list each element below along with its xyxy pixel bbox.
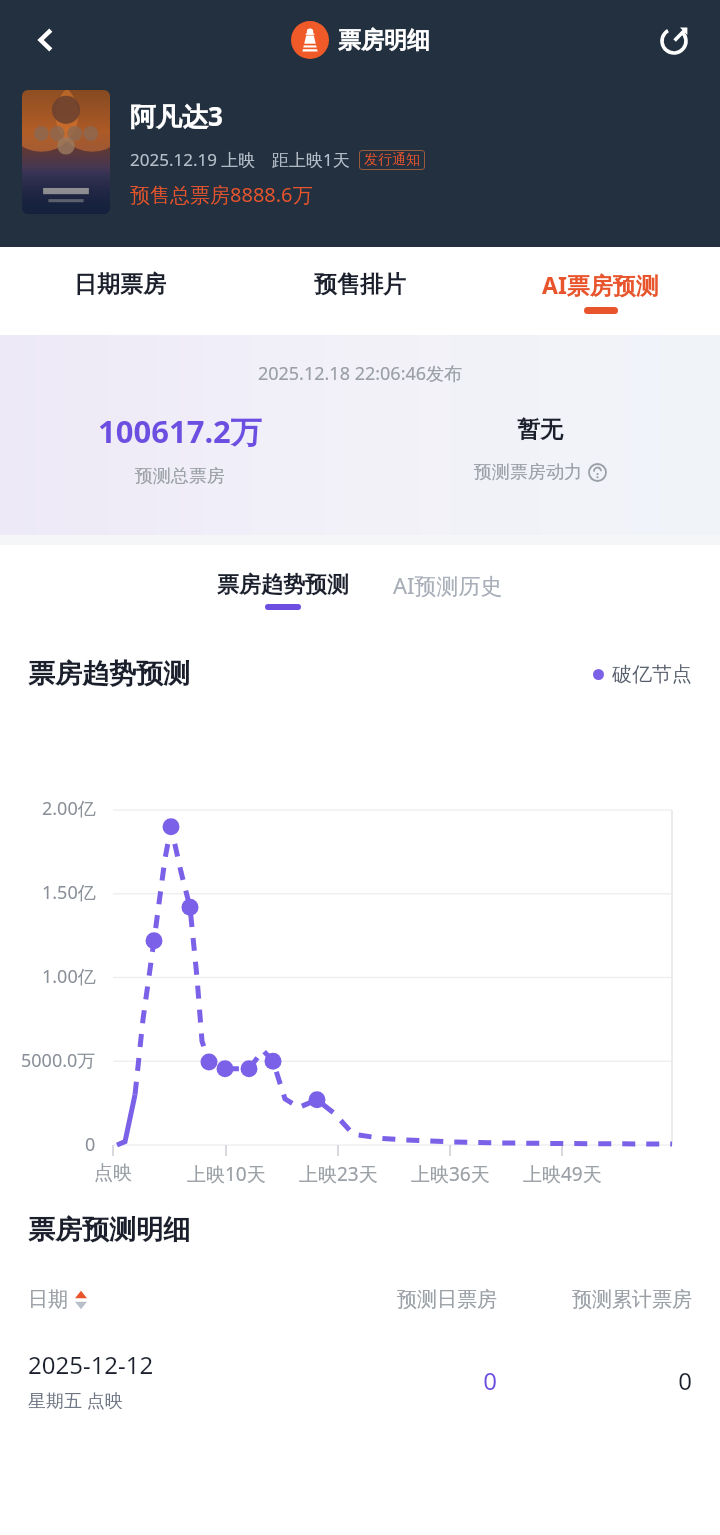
staticText: 0 [85, 1132, 96, 1157]
button[interactable]: Back [18, 12, 74, 68]
button[interactable]: Share [646, 12, 702, 68]
staticText: 暂无 [517, 415, 563, 444]
staticText: 点映 [94, 1161, 132, 1185]
button[interactable]: 日期票房 [0, 247, 240, 335]
staticText: 上映36天 [411, 1161, 490, 1187]
staticText: 星期五 点映 [28, 1388, 123, 1413]
staticText: 预售总票房8888.6万 [130, 181, 313, 208]
button[interactable]: 日期 [28, 1287, 327, 1312]
staticText: 阿凡达3 [130, 98, 223, 134]
staticText: 预测累计票房 [497, 1287, 692, 1312]
staticText: 100617.2万 [98, 410, 262, 452]
staticText: 票房趋势预测 [217, 571, 349, 599]
staticText: 票房明细 [338, 26, 430, 55]
staticText: 预测日票房 [327, 1287, 497, 1312]
staticText: AI预测历史 [393, 570, 503, 600]
button[interactable]: 2025-12-12 [28, 1348, 692, 1413]
staticText: 上映23天 [299, 1161, 378, 1187]
staticText: 预测票房动力 [474, 461, 582, 484]
button[interactable]: 发行通知 [364, 151, 420, 169]
staticText: 预测总票房 [135, 465, 225, 488]
staticText: 预售排片 [314, 270, 406, 299]
staticText: 0 [497, 1364, 692, 1397]
button[interactable]: 预测票房动力 [474, 461, 607, 484]
staticText: 1.00亿 [42, 964, 96, 989]
button[interactable]: AI预测历史 [393, 570, 503, 600]
staticText: 票房预测明细 [28, 1213, 190, 1247]
staticText: 2025-12-12 [28, 1348, 154, 1381]
button[interactable]: AI票房预测 [480, 247, 720, 335]
staticText: 发行通知 [364, 151, 420, 169]
staticText: 破亿节点 [612, 662, 692, 687]
staticText: 日期票房 [74, 270, 166, 299]
staticText: 票房趋势预测 [28, 657, 190, 691]
staticText: AI票房预测 [542, 269, 659, 300]
button[interactable]: 阿凡达3 [22, 90, 720, 214]
staticText: 日期 [28, 1287, 68, 1312]
staticText: 上映49天 [523, 1161, 602, 1187]
staticText: 2.00亿 [42, 796, 96, 821]
staticText: 0 [327, 1364, 497, 1397]
staticText: 上映10天 [187, 1161, 266, 1187]
staticText: 2025.12.18 22:06:46发布 [0, 361, 720, 386]
staticText: 1.50亿 [42, 880, 96, 905]
staticText: 距上映1天 [272, 148, 350, 171]
staticText: 5000.0万 [21, 1048, 96, 1073]
button[interactable]: 票房趋势预测 [217, 571, 349, 610]
staticText: 2025.12.19 上映 [130, 148, 256, 171]
button[interactable]: 预售排片 [240, 247, 480, 335]
